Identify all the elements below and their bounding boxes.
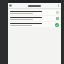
button[interactable]: Menu [9,4,12,7]
button[interactable]: Status [9,22,60,27]
button[interactable]: Status [56,11,59,14]
button[interactable]: Status [56,17,59,20]
button[interactable]: Status [55,23,59,27]
button[interactable]: More options [57,4,60,7]
button[interactable]: Status [9,10,60,15]
button[interactable]: Status [9,16,60,21]
button[interactable]: Search [28,5,41,7]
